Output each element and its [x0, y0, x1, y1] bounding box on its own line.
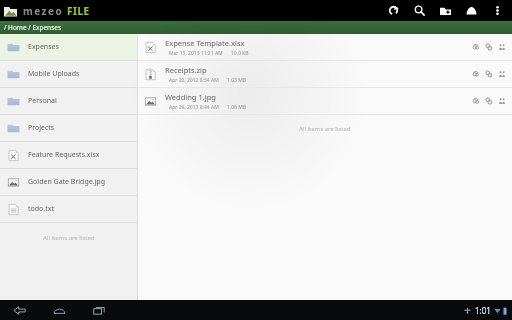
button[interactable]: Mobile Uploads: [0, 61, 137, 87]
staticText: Feature Requests.xlsx: [28, 150, 100, 160]
button[interactable]: Home: [458, 0, 484, 21]
staticText: FILE: [67, 4, 90, 18]
staticText: Mobile Uploads: [28, 69, 80, 79]
staticText: Personal: [28, 96, 57, 106]
staticText: Expenses: [28, 42, 59, 52]
staticText: Receipts.zip: [165, 65, 207, 75]
staticText: 1.03 MB: [227, 77, 247, 84]
button[interactable]: Expense Template.xlsx: [138, 34, 512, 60]
button[interactable]: Feature Requests.xlsx: [0, 142, 137, 168]
button[interactable]: Copy link: [482, 88, 495, 114]
staticText: 1:01: [475, 305, 491, 316]
button[interactable]: Sync: [469, 88, 482, 114]
button[interactable]: Expenses: [0, 34, 137, 60]
staticText: Apr 29, 2013 8:44 AM: [169, 104, 219, 111]
button[interactable]: More options: [484, 0, 510, 21]
button[interactable]: Sync: [469, 34, 482, 60]
button[interactable]: Back: [8, 300, 30, 320]
button[interactable]: Sync: [469, 61, 482, 87]
button[interactable]: Share: [495, 34, 508, 60]
button[interactable]: Copy link: [482, 34, 495, 60]
staticText: Wedding 1.jpg: [165, 92, 216, 102]
staticText: Expense Template.xlsx: [165, 38, 245, 48]
staticText: All items are listed: [299, 125, 351, 133]
staticText: Mar 15, 2013 11:21 AM: [169, 50, 223, 57]
staticText: / Home / Expenses: [4, 23, 62, 32]
button[interactable]: Golden Gate Bridge.jpg: [0, 169, 137, 195]
button[interactable]: Projects: [0, 115, 137, 141]
button[interactable]: Wedding 1.jpg: [138, 88, 512, 114]
staticText: Apr 20, 2012 8:54 AM: [169, 77, 219, 84]
staticText: Projects: [28, 123, 55, 133]
staticText: todo.txt: [28, 204, 54, 214]
staticText: 10.0 KB: [231, 50, 249, 57]
button[interactable]: New folder: [432, 0, 458, 21]
button[interactable]: Share: [495, 88, 508, 114]
staticText: mezeo: [23, 4, 64, 18]
button[interactable]: Share: [495, 61, 508, 87]
button[interactable]: Recent apps: [88, 300, 110, 320]
button[interactable]: Search: [406, 0, 432, 21]
staticText: 1.06 MB: [227, 104, 247, 111]
button[interactable]: Refresh: [380, 0, 406, 21]
button[interactable]: Receipts.zip: [138, 61, 512, 87]
button[interactable]: Copy link: [482, 61, 495, 87]
staticText: Golden Gate Bridge.jpg: [28, 177, 105, 187]
button[interactable]: Personal: [0, 88, 137, 114]
button[interactable]: todo.txt: [0, 196, 137, 222]
button[interactable]: / Home / Expenses: [0, 21, 512, 34]
staticText: All items are listed: [43, 234, 95, 242]
button[interactable]: Home: [48, 300, 70, 320]
